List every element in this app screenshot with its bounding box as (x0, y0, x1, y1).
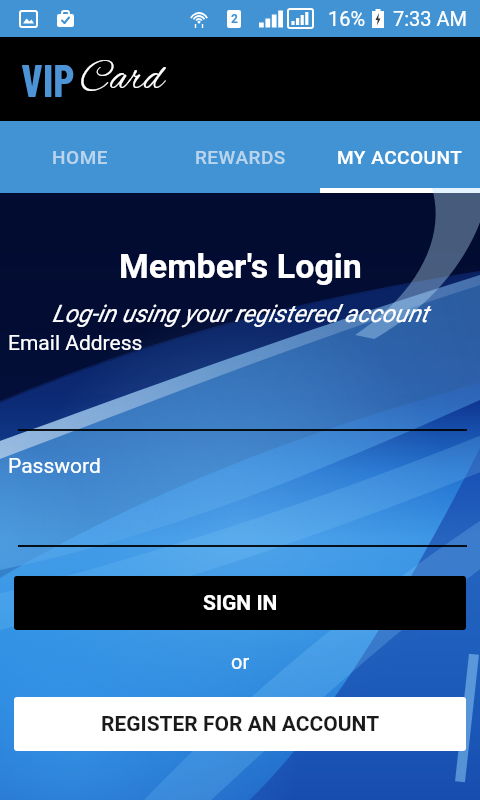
staticText: SIGN IN (203, 591, 278, 616)
staticText: VIP (21, 52, 75, 106)
staticText: Log-in using your registered account (52, 300, 429, 328)
staticText: REWARDS (195, 146, 286, 168)
button[interactable]: REWARDS (160, 121, 320, 193)
staticText: REGISTER FOR AN ACCOUNT (101, 712, 380, 737)
button[interactable]: HOME (0, 121, 160, 193)
staticText: Member's Login (119, 246, 362, 286)
staticText: Password (8, 454, 101, 479)
button[interactable]: SIGN IN (14, 576, 466, 630)
staticText: 2 (231, 12, 238, 26)
button[interactable]: REGISTER FOR AN ACCOUNT (14, 697, 466, 751)
staticText: 7:33 AM (393, 7, 468, 30)
staticText: or (231, 650, 250, 673)
staticText: Card (80, 53, 164, 105)
staticText: MY ACCOUNT (337, 146, 463, 168)
staticText: HOME (52, 146, 109, 168)
staticText: 16% (328, 7, 366, 30)
button[interactable]: MY ACCOUNT (320, 121, 480, 193)
staticText: Email Address (8, 331, 143, 356)
